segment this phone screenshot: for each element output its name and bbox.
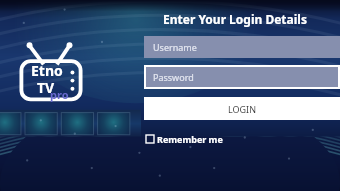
button[interactable]: Password <box>146 67 338 87</box>
staticText: LOGIN <box>228 103 257 115</box>
staticText: Remember me <box>157 133 223 145</box>
staticText: Password <box>153 71 194 83</box>
staticText: Etno <box>31 61 63 80</box>
button[interactable]: Remember me <box>144 132 225 146</box>
button[interactable]: LOGIN <box>144 97 340 120</box>
staticText: pro <box>50 87 69 102</box>
button[interactable]: Username <box>144 36 340 58</box>
staticText: TV <box>37 78 55 97</box>
staticText: Username <box>153 41 197 53</box>
staticText: Enter Your Login Details <box>144 11 326 27</box>
